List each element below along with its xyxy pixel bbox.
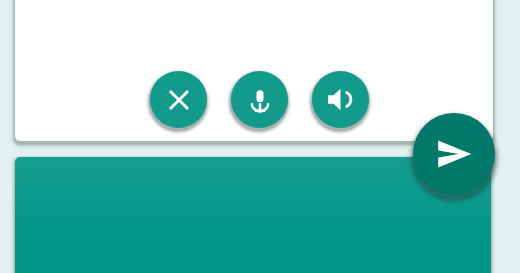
button[interactable]: Close	[150, 71, 207, 128]
button[interactable]: Voice input	[231, 71, 288, 128]
button[interactable]: Sound	[312, 71, 369, 128]
button[interactable]: Send	[413, 113, 495, 195]
